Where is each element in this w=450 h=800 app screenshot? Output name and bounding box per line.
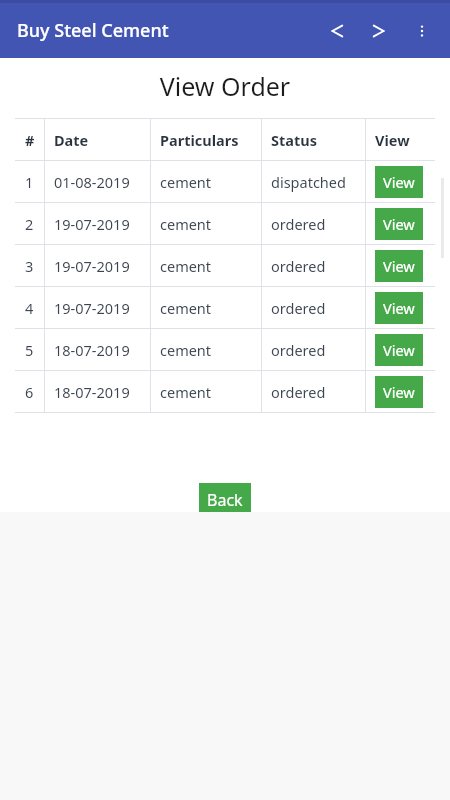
staticText: 19-07-2019 <box>54 256 130 276</box>
staticText: dispatched <box>271 172 346 192</box>
button[interactable]: Next <box>358 9 402 53</box>
staticText: 2 <box>25 214 34 234</box>
staticText: Back <box>207 489 243 506</box>
staticText: cement <box>160 382 212 402</box>
staticText: 5 <box>25 340 34 360</box>
staticText: cement <box>160 256 212 276</box>
staticText: 1 <box>25 172 34 192</box>
staticText: Status <box>271 130 317 150</box>
button[interactable]: View <box>375 292 423 324</box>
staticText: View <box>383 172 415 192</box>
staticText: View <box>383 214 415 234</box>
button[interactable]: View <box>375 250 423 282</box>
staticText: # <box>25 130 35 150</box>
staticText: View Order <box>0 69 450 103</box>
button[interactable]: View <box>375 166 423 198</box>
staticText: 3 <box>25 256 34 276</box>
staticText: 4 <box>25 298 34 318</box>
staticText: View <box>383 382 415 402</box>
staticText: View <box>375 130 410 150</box>
button[interactable]: View <box>375 376 423 408</box>
staticText: 6 <box>25 382 34 402</box>
staticText: 01-08-2019 <box>54 172 130 192</box>
staticText: View <box>383 340 415 360</box>
staticText: ordered <box>271 340 326 360</box>
staticText: ordered <box>271 256 326 276</box>
button[interactable]: View <box>375 334 423 366</box>
button[interactable]: More options <box>402 11 442 51</box>
staticText: View <box>383 298 415 318</box>
staticText: cement <box>160 214 212 234</box>
staticText: 18-07-2019 <box>54 382 130 402</box>
button[interactable]: Previous <box>314 9 358 53</box>
staticText: Particulars <box>160 130 239 150</box>
staticText: 19-07-2019 <box>54 298 130 318</box>
staticText: ordered <box>271 382 326 402</box>
staticText: ordered <box>271 214 326 234</box>
staticText: 19-07-2019 <box>54 214 130 234</box>
staticText: View <box>383 256 415 276</box>
staticText: cement <box>160 172 212 192</box>
staticText: ordered <box>271 298 326 318</box>
staticText: cement <box>160 298 212 318</box>
button[interactable]: View <box>375 208 423 240</box>
staticText: cement <box>160 340 212 360</box>
staticText: Date <box>54 130 89 150</box>
staticText: 18-07-2019 <box>54 340 130 360</box>
button[interactable]: Back <box>199 483 251 512</box>
staticText: Buy Steel Cement <box>17 18 169 43</box>
